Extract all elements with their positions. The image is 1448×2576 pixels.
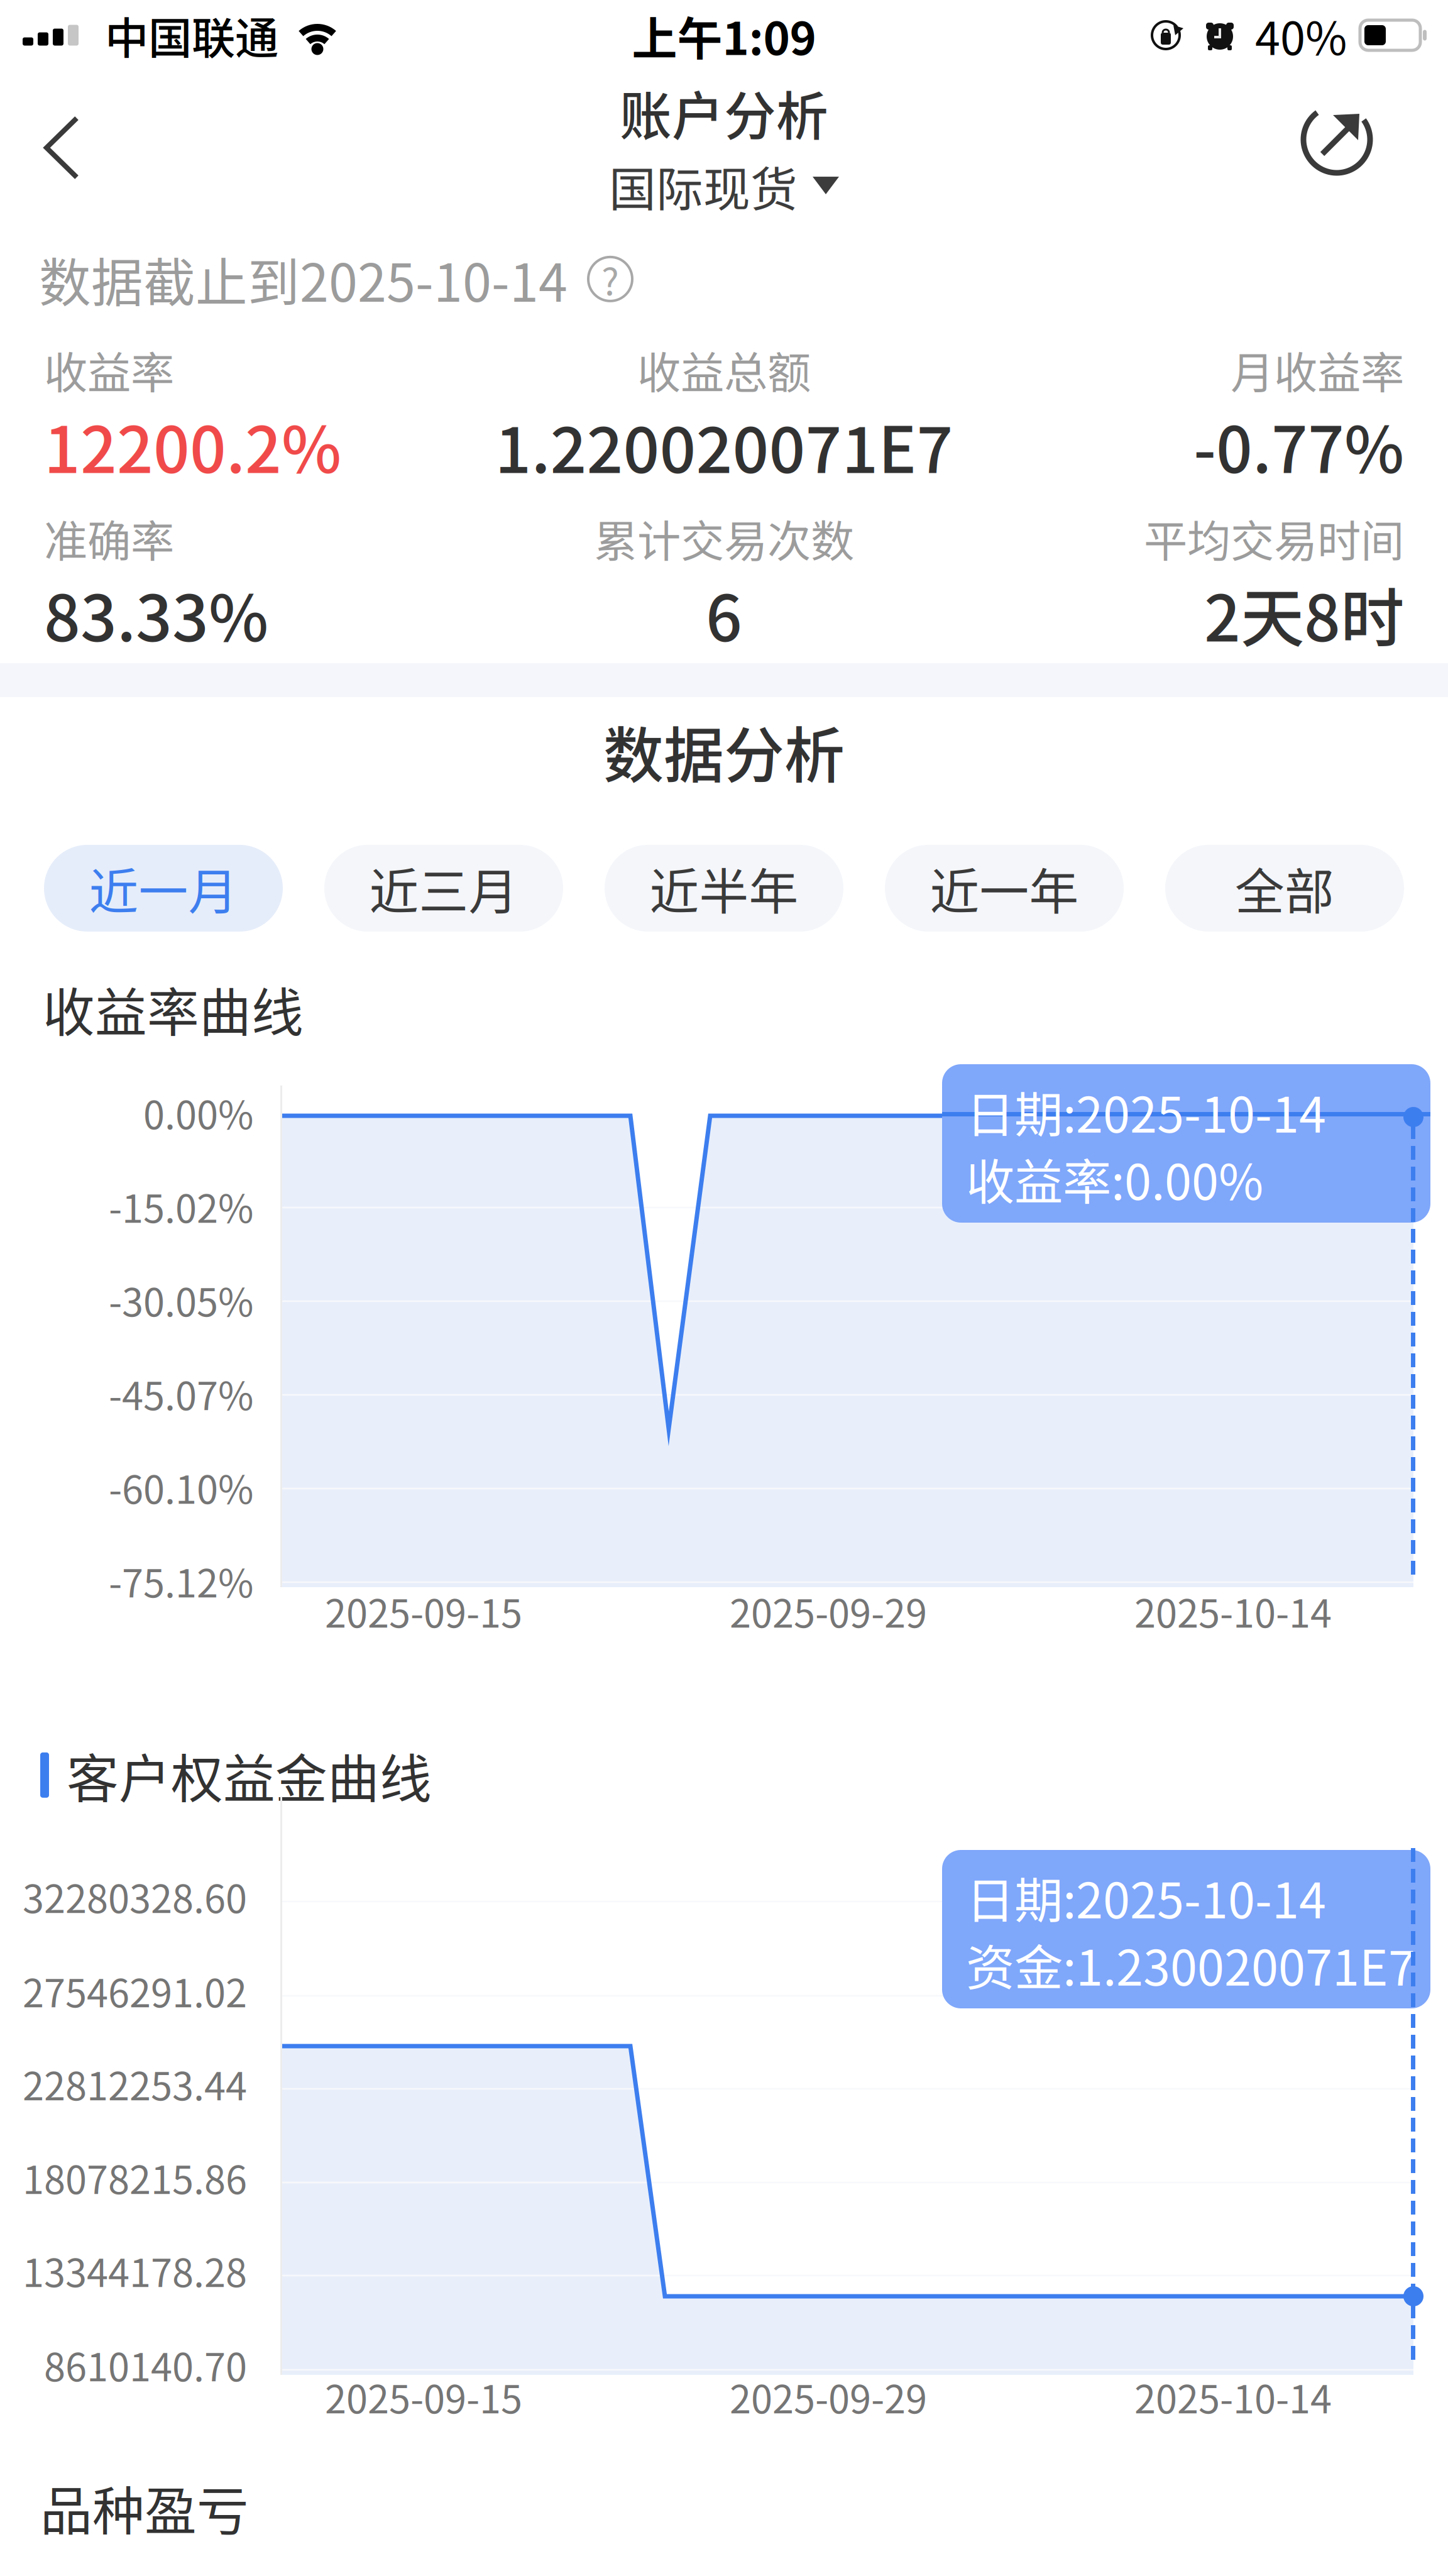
staticText: 品种盈亏 [40,2470,249,2545]
staticText: 2025-10-14 [1134,2369,1332,2424]
staticText: -15.02% [109,1178,253,1234]
staticText: 准确率 [44,507,174,570]
staticText: 12200.2% [44,399,341,491]
staticText: -45.07% [109,1365,253,1421]
staticText: 2025-10-14 [1134,1583,1332,1639]
staticText: 32280328.60 [23,1868,247,1924]
staticText: 收益率 [44,338,174,401]
staticText: 40% [1255,2,1347,68]
staticText: 收益率曲线 [43,971,304,1046]
staticText: 收益率:0.00% [966,1143,1263,1214]
staticText: 0.00% [143,1084,253,1140]
button[interactable]: 近半年 [605,845,843,932]
staticText: 1.220020071E7 [495,399,953,491]
staticText: 近半年 [650,852,798,924]
staticText: 日期:2025-10-14 [966,1076,1326,1147]
staticText: 国际现货 [609,152,798,220]
staticText: 上午1:09 [632,2,816,68]
staticText: 客户权益金曲线 [67,1737,432,1813]
button[interactable]: 分享 [1285,91,1392,185]
staticText: 6 [706,568,742,660]
staticText: -75.12% [109,1553,253,1608]
staticText: 2025-09-15 [325,1583,522,1639]
button[interactable]: 说明 [586,255,634,303]
staticText: 全部 [1235,852,1334,924]
staticText: 22812253.44 [23,2056,247,2111]
staticText: -30.05% [109,1272,253,1327]
button[interactable]: 近三月 [324,845,563,932]
staticText: 2025-09-29 [730,1583,927,1639]
staticText: 2025-09-29 [730,2369,927,2424]
staticText: 18078215.86 [23,2149,247,2205]
staticText: 账户分析 [620,75,828,150]
staticText: -60.10% [109,1459,253,1515]
button[interactable]: 全部 [1165,845,1404,932]
staticText: 收益总额 [637,338,811,401]
staticText: 83.33% [44,568,268,660]
staticText: 数据分析 [603,707,845,795]
staticText: 数据截止到2025-10-14 [39,241,568,317]
staticText: 资金:1.230020071E7 [966,1929,1415,2000]
staticText: 近一年 [930,852,1079,924]
staticText: 月收益率 [1231,338,1404,401]
staticText: 2025-09-15 [325,2369,522,2424]
button[interactable]: 国际现货 [609,152,839,220]
staticText: 平均交易时间 [1144,507,1404,570]
staticText: 近三月 [369,852,518,924]
staticText: 累计交易次数 [594,507,854,570]
staticText: 日期:2025-10-14 [966,1862,1326,1932]
staticText: 13344178.28 [23,2242,247,2298]
staticText: 中国联通 [105,4,278,67]
button[interactable]: 近一月 [44,845,283,932]
staticText: ? [601,252,619,306]
staticText: 2天8时 [1204,568,1404,660]
staticText: 近一月 [89,852,238,924]
staticText: 27546291.02 [23,1962,247,2018]
staticText: 8610140.70 [44,2337,247,2392]
staticText: -0.77% [1193,399,1404,491]
button[interactable]: 近一年 [885,845,1124,932]
button[interactable]: 返回 [11,104,112,192]
